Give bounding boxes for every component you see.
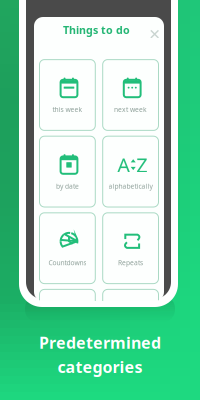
button[interactable]: Repeats	[103, 213, 158, 284]
staticText: A	[117, 151, 130, 178]
staticText: next week	[114, 105, 147, 114]
button[interactable]: next week	[103, 60, 158, 130]
button[interactable]: Countdowns	[39, 213, 95, 284]
staticText: ✕	[148, 26, 160, 43]
button[interactable]: More categories	[39, 289, 95, 360]
button[interactable]: A	[103, 136, 158, 207]
staticText: Z	[136, 151, 147, 178]
staticText: alphabetically	[109, 182, 153, 191]
button[interactable]: by date	[39, 136, 95, 207]
button[interactable]: Close	[148, 28, 161, 41]
staticText: Repeats	[118, 258, 143, 267]
staticText: Countdowns	[48, 258, 86, 267]
staticText: by date	[56, 182, 79, 191]
staticText: Predetermined	[39, 332, 161, 353]
staticText: Things to do	[63, 23, 130, 37]
staticText: categories	[57, 356, 142, 377]
button[interactable]: this week	[39, 60, 95, 130]
button[interactable]: More categories	[103, 289, 158, 360]
staticText: this week	[52, 105, 82, 114]
